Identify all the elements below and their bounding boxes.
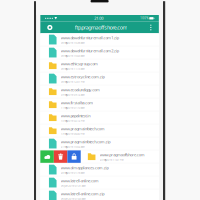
- staticText: 19 May 2016 04:40 PM: [61, 132, 84, 135]
- button[interactable]: Lock: [67, 150, 81, 163]
- button[interactable]: www.latrell-online.com: [40, 176, 159, 189]
- staticText: www.pragmainfotech.com.zip: [61, 139, 110, 144]
- staticText: 08 May 2016 10:43 AM: [61, 54, 84, 57]
- staticText: 11 May 2016 07:10 AM: [61, 106, 84, 109]
- staticText: www.pragmaoffshore.com: [100, 152, 145, 157]
- staticText: 06 Jun 2016 07:31 AM: [61, 184, 85, 187]
- staticText: www.papalntest.in: [61, 113, 90, 118]
- button[interactable]: www.olmappliances.com.zip: [40, 163, 159, 176]
- staticText: 06 Jun 2016 07:45 AM: [61, 197, 85, 200]
- staticText: 08 May 2016 12:01 PM: [61, 80, 84, 83]
- button[interactable]: www.estrocycline.com.zip: [40, 72, 159, 85]
- button[interactable]: www.pragmainfotech.com.zip: [40, 137, 159, 150]
- staticText: www.first-alba.com: [61, 100, 93, 105]
- staticText: 21:00: [94, 16, 103, 21]
- staticText: www.latrell-online.com: [61, 178, 99, 183]
- button[interactable]: www.latrell-online.com.zip: [40, 189, 159, 200]
- button[interactable]: More options: [143, 21, 159, 33]
- staticText: www.ecoalundiggy.com: [61, 87, 100, 92]
- staticText: 25 May 2016 11:41 PM: [100, 158, 123, 161]
- button[interactable]: www.ethicsgroup.com: [40, 59, 159, 72]
- staticText: 08 May 2016 10:38 AM: [61, 41, 84, 44]
- staticText: 28 May 2016 01:16 AM: [61, 171, 84, 174]
- button[interactable]: Sync: [40, 21, 59, 33]
- staticText: 08 May 2016 11:15 AM: [61, 67, 84, 70]
- staticText: www.ethicsgroup.com: [61, 61, 98, 66]
- staticText: 09 May 2016 09:12 AM: [61, 93, 84, 96]
- staticText: 100%: [140, 16, 148, 20]
- button[interactable]: www.papalntest.in: [40, 111, 159, 124]
- button[interactable]: www.dawahfurnituremall.com2.zip: [40, 46, 159, 59]
- button[interactable]: www.pragmainfotech.com: [40, 124, 159, 137]
- staticText: www.dawahfurnituremall.com1.zip: [61, 35, 119, 40]
- button[interactable]: Delete: [54, 150, 67, 163]
- staticText: 15 May 2016 02:12 PM: [61, 119, 84, 122]
- staticText: www.latrell-online.com.zip: [61, 191, 104, 196]
- staticText: www.pragmainfotech.com: [61, 126, 105, 131]
- staticText: www.estrocycline.com.zip: [61, 74, 105, 79]
- staticText: www.olmappliances.com.zip: [61, 165, 108, 170]
- button[interactable]: www.ecoalundiggy.com: [40, 85, 159, 98]
- staticText: 21 May 2016 10:02 AM: [61, 145, 84, 148]
- staticText: www.dawahfurnituremall.com2.zip: [61, 48, 119, 53]
- button[interactable]: www.pragmaoffshore.com: [81, 150, 159, 163]
- button[interactable]: www.dawahfurnituremall.com1.zip: [40, 33, 159, 46]
- button[interactable]: Upload: [40, 150, 54, 163]
- staticText: ftp.pragmaoffshore.com: [75, 24, 127, 31]
- button[interactable]: www.first-alba.com: [40, 98, 159, 111]
